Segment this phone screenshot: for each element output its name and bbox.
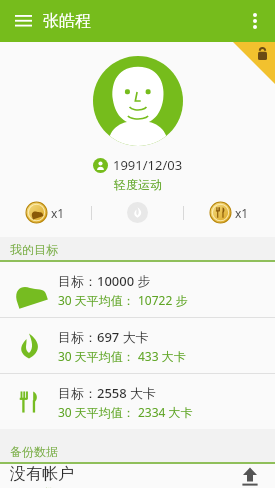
staticText: 无可备份数据。 xyxy=(10,486,87,488)
button[interactable] xyxy=(92,198,183,227)
button[interactable]: x1 xyxy=(0,198,91,227)
staticText: 30 天平均值： 433 大卡 xyxy=(58,348,186,364)
button[interactable]: 目标：697 大卡 xyxy=(0,318,275,373)
button[interactable]: More options xyxy=(239,5,271,37)
button[interactable]: Locked xyxy=(233,42,275,84)
staticText: x1 xyxy=(235,205,249,221)
staticText: 目标：10000 步 xyxy=(58,272,151,290)
button[interactable]: Menu xyxy=(8,6,38,36)
staticText: 张皓程 xyxy=(43,11,91,31)
button[interactable]: Backup now xyxy=(235,464,265,488)
button[interactable]: 没有帐户 xyxy=(0,464,275,488)
button[interactable]: x1 xyxy=(184,198,275,227)
staticText: 1991/12/03 xyxy=(113,156,183,174)
button[interactable]: 目标：2558 大卡 xyxy=(0,374,275,429)
staticText: 30 天平均值： 10722 步 xyxy=(58,292,188,308)
staticText: 目标：2558 大卡 xyxy=(58,384,157,402)
staticText: 30 天平均值： 2334 大卡 xyxy=(58,404,193,420)
staticText: x1 xyxy=(51,205,65,221)
staticText: 备份数据 xyxy=(10,444,58,459)
staticText: 没有帐户 xyxy=(10,464,74,484)
button[interactable]: Profile photo xyxy=(93,56,183,146)
staticText: 目标：697 大卡 xyxy=(58,328,149,346)
staticText: 轻度运动 xyxy=(114,177,162,192)
staticText: 我的目标 xyxy=(10,242,58,257)
button[interactable]: 目标：10000 步 xyxy=(0,262,275,317)
